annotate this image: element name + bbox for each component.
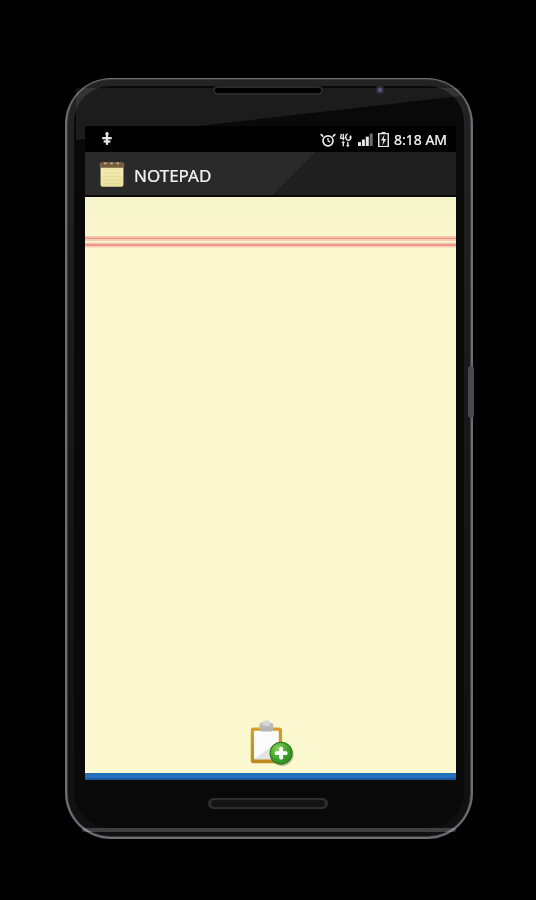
button[interactable]: NOTEPAD	[85, 152, 456, 197]
staticText: NOTEPAD	[134, 164, 212, 187]
button[interactable]: New note	[243, 716, 299, 772]
staticText: 8:18 AM	[394, 130, 448, 149]
